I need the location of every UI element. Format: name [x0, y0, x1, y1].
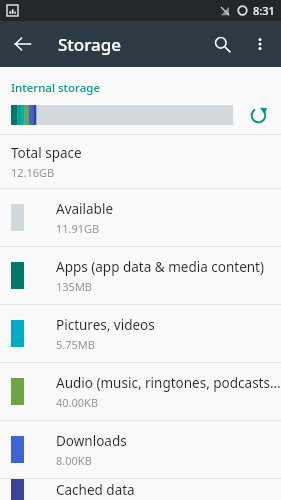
button[interactable]: Downloads	[0, 421, 281, 478]
staticText: Storage	[58, 33, 122, 56]
button[interactable]: More options	[241, 25, 279, 63]
staticText: 5.75MB	[56, 337, 95, 352]
staticText: 135MB	[56, 279, 93, 294]
staticText: Downloads	[56, 432, 127, 450]
button[interactable]: Audio (music, ringtones, podcasts, et..	[0, 363, 281, 420]
staticText: 8.00KB	[56, 453, 92, 468]
button[interactable]: Back	[4, 25, 42, 63]
staticText: Available	[56, 200, 113, 218]
staticText: 8:31	[253, 3, 275, 18]
button[interactable]: Total space	[0, 135, 281, 188]
button[interactable]: Pictures, videos	[0, 305, 281, 362]
staticText: Cached data	[56, 481, 135, 499]
staticText: Audio (music, ringtones, podcasts, et..	[56, 374, 281, 392]
staticText: Pictures, videos	[56, 316, 155, 334]
button[interactable]: Search	[203, 25, 241, 63]
staticText: Internal storage	[11, 80, 100, 96]
button[interactable]: Cached data	[0, 479, 281, 500]
button[interactable]: Apps (app data & media content)	[0, 247, 281, 304]
staticText: 12.16GB	[11, 165, 55, 180]
staticText: 40.00KB	[56, 395, 99, 410]
button[interactable]: Refresh	[243, 100, 273, 130]
staticText: 11.91GB	[56, 221, 100, 236]
button[interactable]: Available	[0, 189, 281, 246]
staticText: Total space	[11, 144, 82, 162]
staticText: Apps (app data & media content)	[56, 258, 265, 276]
